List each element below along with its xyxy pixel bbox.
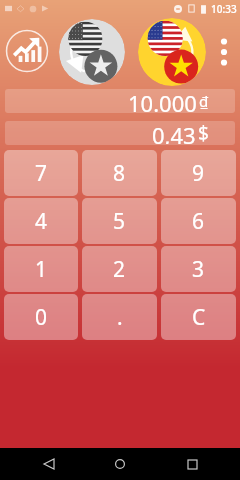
staticText: . [117,303,123,332]
staticText: 7 [35,159,48,188]
staticText: 2 [113,255,126,284]
staticText: 10.000 [128,89,197,112]
button[interactable]: Exchange rate chart [5,29,49,73]
button[interactable]: Currency pair USD VND [59,19,125,85]
staticText: 0,43 [152,121,196,144]
button[interactable]: 0,43 [5,121,235,145]
staticText: ₫ [199,91,209,111]
button[interactable]: 10.000 [5,89,235,113]
button[interactable]: 9 [161,150,236,196]
staticText: 5 [113,207,126,236]
button[interactable]: . [82,294,157,340]
button[interactable]: C [161,294,236,340]
button[interactable]: 5 [82,198,157,244]
button[interactable]: Home [97,448,143,480]
button[interactable]: 2 [82,246,157,292]
button[interactable]: 6 [161,198,236,244]
staticText: $ [198,121,209,144]
button[interactable]: 1 [4,246,78,292]
staticText: C [192,303,206,332]
button[interactable]: 4 [4,198,78,244]
button[interactable]: Currency pair USD VND selected [138,18,206,86]
button[interactable]: Back [26,448,72,480]
button[interactable]: 7 [4,150,78,196]
button[interactable]: 3 [161,246,236,292]
button[interactable]: More options [210,26,238,78]
staticText: 0 [35,303,48,332]
staticText: 10:33 [211,2,237,16]
button[interactable]: 8 [82,150,157,196]
staticText: 1 [35,255,48,284]
staticText: 9 [192,159,205,188]
staticText: 4 [35,207,48,236]
button[interactable]: 0 [4,294,78,340]
staticText: 3 [192,255,205,284]
staticText: 8 [113,159,126,188]
button[interactable]: Recents [169,448,215,480]
staticText: 6 [192,207,205,236]
